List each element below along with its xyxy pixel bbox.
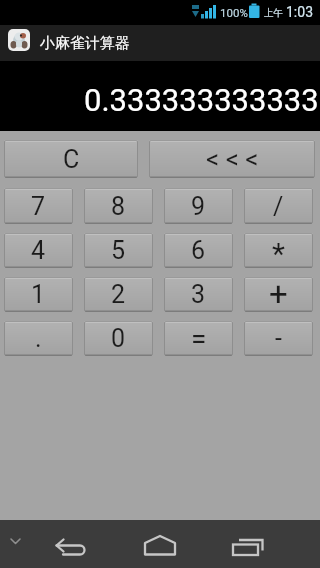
button[interactable]: -: [244, 321, 313, 356]
staticText: 9: [191, 192, 206, 221]
staticText: 100%: [220, 6, 248, 19]
staticText: 3: [191, 280, 206, 309]
staticText: 5: [111, 236, 126, 265]
staticText: 6: [191, 236, 206, 265]
staticText: 2: [111, 280, 126, 309]
button[interactable]: 0: [84, 321, 153, 356]
staticText: 0: [111, 324, 126, 353]
staticText: C: [63, 145, 80, 174]
button[interactable]: [40, 520, 100, 568]
staticText: 1:03: [286, 4, 313, 20]
staticText: 1: [31, 280, 46, 309]
button[interactable]: /: [244, 188, 313, 224]
button[interactable]: +: [244, 277, 313, 312]
button[interactable]: 7: [4, 188, 73, 224]
button[interactable]: 8: [84, 188, 153, 224]
staticText: < < <: [206, 144, 259, 174]
button[interactable]: [130, 520, 190, 568]
button[interactable]: 9: [164, 188, 233, 224]
staticText: 上午: [264, 7, 283, 19]
button[interactable]: 5: [84, 233, 153, 268]
staticText: =: [191, 322, 207, 355]
button[interactable]: C: [4, 140, 138, 178]
button[interactable]: 1: [4, 277, 73, 312]
button[interactable]: < < <: [149, 140, 315, 178]
staticText: .: [35, 324, 42, 353]
staticText: *: [272, 236, 285, 268]
button[interactable]: 6: [164, 233, 233, 268]
staticText: -: [275, 324, 282, 353]
button[interactable]: 2: [84, 277, 153, 312]
staticText: 小麻雀计算器: [40, 34, 130, 53]
staticText: 8: [111, 192, 126, 221]
button[interactable]: 4: [4, 233, 73, 268]
staticText: 4: [31, 236, 46, 265]
button[interactable]: 3: [164, 277, 233, 312]
button[interactable]: *: [244, 233, 313, 268]
button[interactable]: =: [164, 321, 233, 356]
staticText: +: [269, 277, 288, 309]
staticText: 0.333333333333: [84, 82, 319, 118]
button[interactable]: [216, 520, 276, 568]
staticText: /: [273, 192, 284, 221]
button[interactable]: .: [4, 321, 73, 356]
staticText: 7: [31, 192, 46, 221]
